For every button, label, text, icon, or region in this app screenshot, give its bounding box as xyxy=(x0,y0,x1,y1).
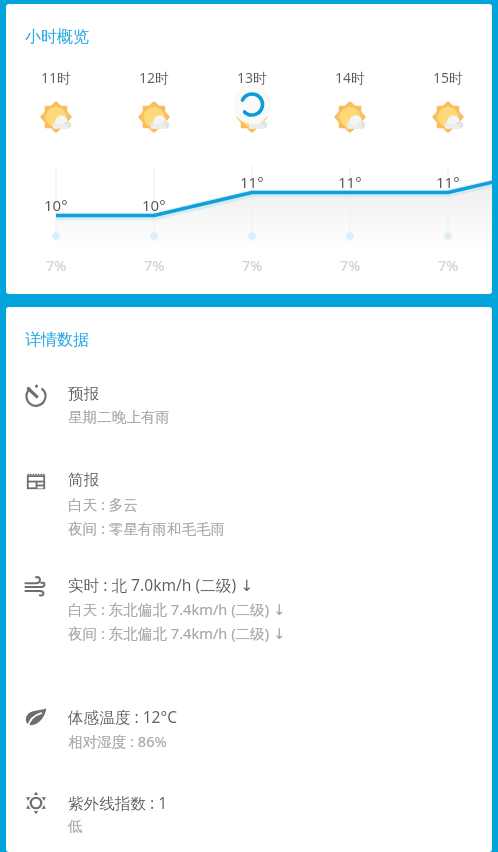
staticText: 7% xyxy=(340,255,361,275)
button[interactable]: 13时 天气 xyxy=(208,64,296,140)
staticText: 实时 : 北 7.0km/h (二级) ↓ xyxy=(68,574,254,595)
staticText: 白天 : 多云 xyxy=(68,494,138,514)
staticText: 简报 xyxy=(68,470,100,490)
staticText: 7% xyxy=(144,255,165,275)
staticText: 夜间 : 东北偏北 7.4km/h (二级) ↓ xyxy=(68,623,286,643)
button[interactable]: 实时 : 北 7.0km/h (二级) ↓ xyxy=(6,566,492,651)
staticText: 白天 : 东北偏北 7.4km/h (二级) ↓ xyxy=(68,599,286,619)
staticText: 7% xyxy=(46,255,67,275)
staticText: 15时 xyxy=(433,68,464,87)
staticText: 10° xyxy=(142,195,166,215)
staticText: 小时概览 xyxy=(25,27,89,47)
button[interactable]: 14时 天气 xyxy=(306,64,394,140)
staticText: 星期二晚上有雨 xyxy=(68,408,171,426)
staticText: 夜间 : 零星有雨和毛毛雨 xyxy=(68,518,226,538)
staticText: 11时 xyxy=(41,68,72,87)
button[interactable]: 简报 xyxy=(6,462,492,546)
staticText: 10° xyxy=(44,195,68,215)
staticText: 11° xyxy=(240,172,264,192)
staticText: 13时 xyxy=(237,68,268,87)
staticText: 12时 xyxy=(139,68,170,87)
staticText: 7% xyxy=(242,255,263,275)
button[interactable]: 15时 天气 xyxy=(404,64,492,140)
staticText: 紫外线指数 : 1 xyxy=(68,792,168,813)
button[interactable]: 预报 xyxy=(6,376,492,434)
staticText: 14时 xyxy=(335,68,366,87)
staticText: 11° xyxy=(338,172,362,192)
staticText: 相对湿度 : 86% xyxy=(68,731,167,751)
staticText: 7% xyxy=(438,255,459,275)
staticText: 体感温度 : 12°C xyxy=(68,706,178,727)
staticText: 预报 xyxy=(68,384,100,404)
staticText: 详情数据 xyxy=(25,330,89,350)
staticText: 11° xyxy=(436,172,460,192)
button[interactable]: 11时 天气 xyxy=(12,64,100,140)
button[interactable]: 12时 天气 xyxy=(110,64,198,140)
staticText: 低 xyxy=(68,817,83,835)
button[interactable]: 体感温度 : 12°C xyxy=(6,698,492,759)
button[interactable]: 紫外线指数 : 1 xyxy=(6,784,492,843)
